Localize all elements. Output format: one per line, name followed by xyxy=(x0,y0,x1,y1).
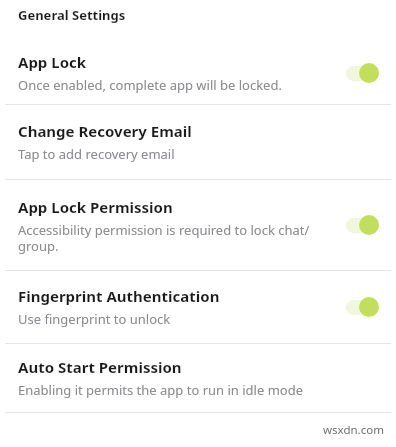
button[interactable]: App Lock Permission toggle xyxy=(342,211,386,239)
button[interactable]: App Lock toggle xyxy=(342,59,386,87)
staticText: wsxdn.com xyxy=(323,422,384,438)
button[interactable]: Fingerprint Authentication xyxy=(0,271,396,343)
staticText: General Settings xyxy=(18,6,126,24)
staticText: App Lock xyxy=(18,52,87,72)
staticText: Enabling it permits the app to run in id… xyxy=(18,381,303,399)
button[interactable]: Fingerprint Authentication toggle xyxy=(342,293,386,321)
staticText: Auto Start Permission xyxy=(18,357,182,377)
button[interactable]: Change Recovery Email xyxy=(0,105,396,179)
button[interactable]: App Lock Permission xyxy=(0,180,396,270)
staticText: Accessibility permission is required to … xyxy=(18,221,336,254)
staticText: Use fingerprint to unlock xyxy=(18,310,171,328)
staticText: App Lock Permission xyxy=(18,197,173,217)
staticText: Fingerprint Authentication xyxy=(18,286,220,306)
staticText: Change Recovery Email xyxy=(18,121,192,141)
staticText: Tap to add recovery email xyxy=(18,145,175,163)
button[interactable]: App Lock xyxy=(0,42,396,104)
staticText: Once enabled, complete app will be locke… xyxy=(18,76,282,94)
button[interactable]: Auto Start Permission xyxy=(0,344,396,412)
